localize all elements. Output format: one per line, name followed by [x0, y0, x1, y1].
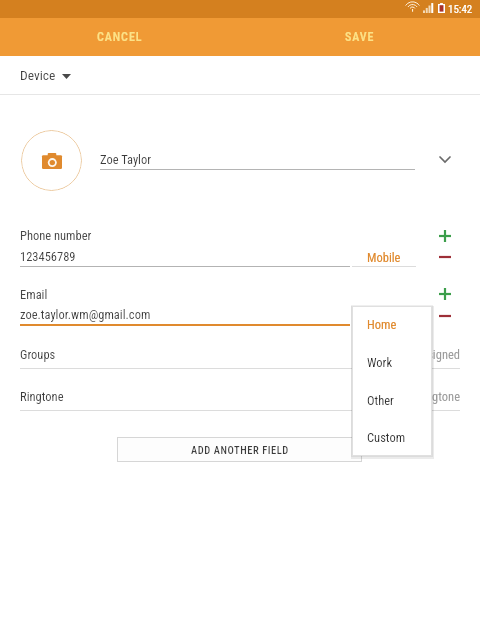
staticText: Groups [20, 347, 56, 362]
staticText: Phone number [20, 228, 92, 243]
staticText: Device [20, 67, 56, 83]
staticText: 123456789 [20, 249, 76, 264]
button[interactable]: SAVE [240, 18, 480, 56]
staticText: Mobile [367, 250, 401, 265]
staticText: Zoe Taylor [100, 152, 152, 167]
button[interactable]: ADD ANOTHER FIELD [117, 437, 362, 462]
button[interactable]: Remove email [434, 305, 456, 327]
button[interactable]: Expand name fields [433, 148, 456, 171]
button[interactable]: Add email [434, 283, 456, 305]
button[interactable]: Home [352, 306, 432, 343]
button[interactable]: Add phone number [434, 225, 456, 247]
staticText: Ringtone [20, 389, 64, 404]
staticText: Custom [367, 430, 406, 445]
staticText: Email [20, 287, 48, 302]
staticText: Home [367, 317, 397, 332]
button[interactable] [0, 338, 480, 368]
staticText: SAVE [345, 30, 375, 44]
button[interactable] [0, 380, 480, 410]
staticText: Default ringtone [380, 389, 460, 404]
button[interactable]: Device [0, 56, 480, 94]
button[interactable]: Mobile [352, 250, 416, 270]
staticText: zoe.taylor.wm@gmail.com [20, 307, 151, 322]
staticText: Not assigned [394, 347, 460, 362]
staticText: ADD ANOTHER FIELD [191, 444, 289, 456]
button[interactable]: Other [352, 382, 432, 419]
button[interactable]: CANCEL [0, 18, 240, 56]
staticText: CANCEL [97, 30, 143, 44]
staticText: Work [367, 355, 393, 370]
button[interactable]: Add photo [21, 130, 82, 191]
staticText: Other [367, 393, 394, 408]
button[interactable]: Work [352, 344, 432, 381]
button[interactable]: Custom [352, 419, 432, 456]
button[interactable]: Remove phone number [434, 246, 456, 268]
staticText: 15:42 [448, 3, 473, 16]
